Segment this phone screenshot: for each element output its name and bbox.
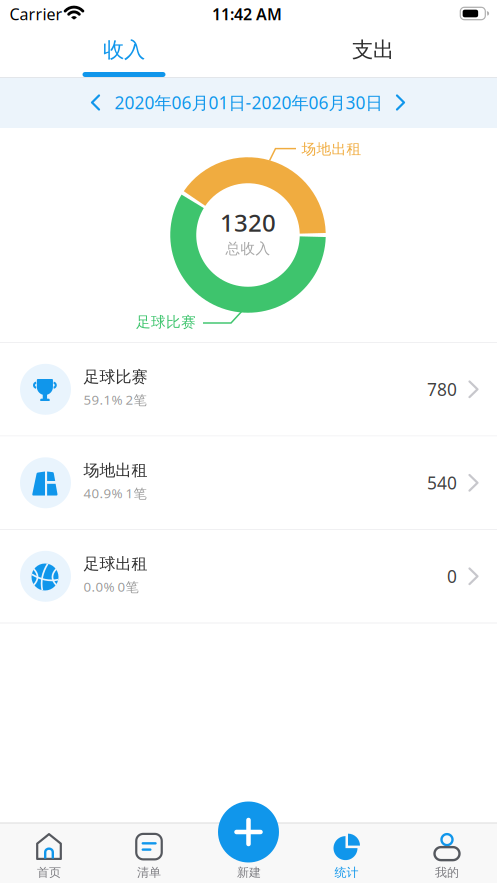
staticText: 首页 bbox=[37, 865, 61, 880]
button[interactable]: Previous month bbox=[81, 87, 111, 117]
staticText: 11:42 AM bbox=[212, 3, 282, 25]
staticText: 2020年06月01日-2020年06月30日 bbox=[114, 91, 382, 114]
staticText: 足球出租 bbox=[83, 554, 147, 574]
staticText: 0 bbox=[447, 565, 457, 588]
button[interactable]: 我的 bbox=[407, 827, 487, 883]
staticText: 足球比赛 bbox=[83, 367, 147, 387]
staticText: 0.0% 0笔 bbox=[83, 578, 138, 595]
staticText: 场地出租 bbox=[301, 140, 361, 158]
staticText: 1320 bbox=[220, 207, 276, 238]
staticText: 新建 bbox=[237, 865, 261, 880]
button[interactable]: 清单 bbox=[109, 827, 189, 883]
button[interactable]: 足球比赛 bbox=[0, 343, 497, 435]
staticText: 780 bbox=[427, 378, 457, 401]
staticText: 总收入 bbox=[225, 240, 270, 258]
staticText: 足球比赛 bbox=[136, 313, 196, 331]
staticText: 场地出租 bbox=[83, 461, 147, 480]
button[interactable]: 场地出租 bbox=[0, 436, 497, 529]
staticText: 统计 bbox=[334, 865, 358, 880]
button[interactable]: 新建 bbox=[218, 801, 279, 862]
button[interactable]: 首页 bbox=[9, 827, 89, 883]
staticText: 我的 bbox=[435, 865, 459, 880]
button[interactable]: 足球出租 bbox=[0, 530, 497, 622]
staticText: 59.1% 2笔 bbox=[83, 391, 146, 408]
staticText: 540 bbox=[427, 471, 457, 494]
staticText: 支出 bbox=[352, 37, 394, 63]
staticText: 40.9% 1笔 bbox=[83, 484, 146, 502]
button[interactable]: 统计 bbox=[306, 827, 386, 883]
button[interactable]: Next month bbox=[385, 87, 415, 117]
staticText: Carrier bbox=[9, 3, 62, 25]
staticText: 清单 bbox=[137, 865, 161, 880]
staticText: 收入 bbox=[103, 37, 145, 63]
button[interactable]: 支出 bbox=[273, 28, 473, 72]
button[interactable]: 收入 bbox=[24, 28, 224, 72]
